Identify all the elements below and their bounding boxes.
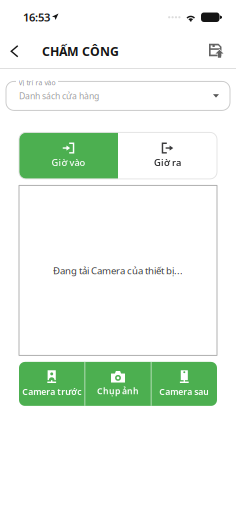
button[interactable]: Back [5, 35, 24, 67]
staticText: Vị trí ra vào [18, 78, 55, 87]
staticText: Danh sách cửa hàng [19, 90, 99, 102]
button[interactable]: Camera sau [152, 362, 217, 406]
button[interactable]: Danh sách cửa hàng [6, 77, 230, 110]
staticText: Giờ vào [51, 156, 85, 169]
button[interactable]: Save [202, 35, 232, 67]
staticText: Camera sau [159, 386, 209, 397]
staticText: CHẤM CÔNG [42, 43, 119, 60]
staticText: 16:53 [23, 10, 50, 25]
button[interactable]: Camera trước [19, 362, 84, 406]
button[interactable]: Chụp ảnh [85, 362, 151, 406]
staticText: Chụp ảnh [97, 385, 139, 397]
button[interactable]: Giờ vào [19, 132, 118, 179]
staticText: Camera trước [22, 386, 81, 397]
staticText: Giờ ra [154, 156, 181, 169]
button[interactable]: Giờ ra [118, 132, 217, 179]
staticText: Đang tải Camera của thiết bị... [53, 264, 183, 277]
